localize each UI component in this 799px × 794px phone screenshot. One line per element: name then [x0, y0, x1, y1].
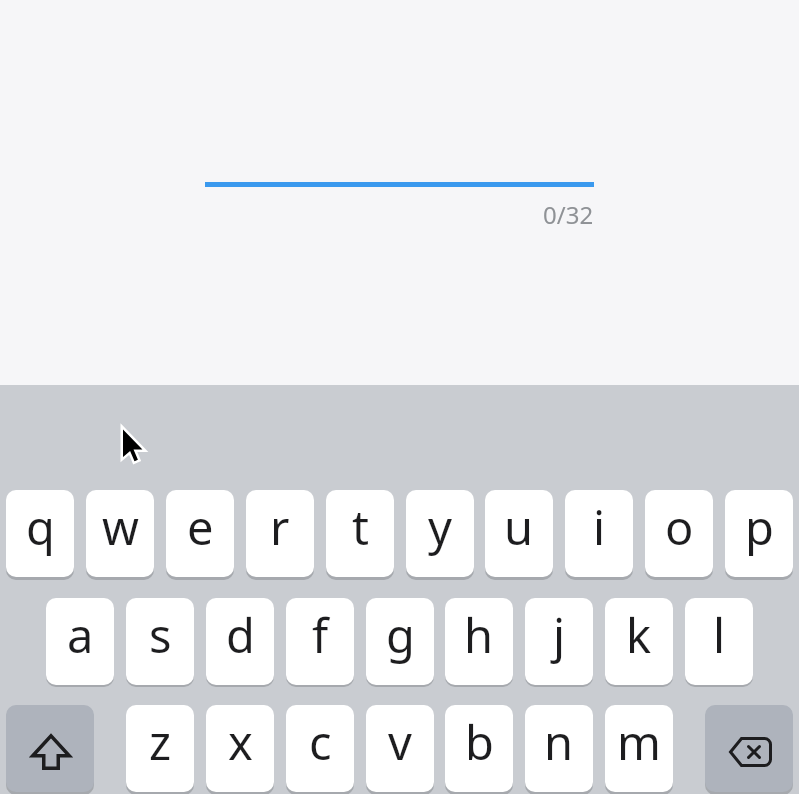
button[interactable]: t [326, 490, 394, 577]
staticText: d [226, 603, 255, 667]
button[interactable]: m [605, 705, 673, 792]
button[interactable]: f [286, 598, 354, 685]
staticText: h [464, 603, 494, 667]
button[interactable]: g [366, 598, 434, 685]
staticText: v [388, 710, 412, 774]
staticText: k [626, 603, 652, 667]
staticText: q [26, 495, 55, 559]
button[interactable] [205, 130, 594, 187]
button[interactable]: k [605, 598, 673, 685]
button[interactable]: e [166, 490, 234, 577]
button[interactable]: l [685, 598, 753, 685]
button[interactable]: v [366, 705, 434, 792]
button[interactable]: b [445, 705, 513, 792]
button[interactable]: r [246, 490, 314, 577]
staticText: f [312, 603, 329, 667]
staticText: g [386, 603, 415, 667]
staticText: n [544, 710, 574, 774]
staticText: s [149, 603, 172, 667]
button[interactable]: h [445, 598, 513, 685]
button[interactable]: u [485, 490, 553, 577]
staticText: i [593, 495, 606, 559]
button[interactable]: s [126, 598, 194, 685]
staticText: z [149, 710, 172, 774]
button[interactable]: n [525, 705, 593, 792]
staticText: b [465, 710, 494, 774]
button[interactable]: a [46, 598, 114, 685]
staticText: o [665, 495, 694, 559]
button[interactable]: z [126, 705, 194, 792]
button[interactable]: p [725, 490, 793, 577]
staticText: m [617, 710, 661, 774]
staticText: p [745, 495, 774, 559]
staticText: 0/32 [543, 198, 594, 228]
button[interactable]: x [206, 705, 274, 792]
staticText: a [67, 603, 94, 667]
button[interactable]: q [6, 490, 74, 577]
button[interactable]: j [525, 598, 593, 685]
staticText: l [713, 603, 726, 667]
button[interactable]: c [286, 705, 354, 792]
staticText: x [228, 710, 253, 774]
button[interactable]: d [206, 598, 274, 685]
button[interactable] [6, 705, 94, 792]
button[interactable]: i [565, 490, 633, 577]
button[interactable]: w [86, 490, 154, 577]
staticText: u [504, 495, 534, 559]
button[interactable] [705, 705, 793, 792]
button[interactable]: y [406, 490, 474, 577]
staticText: e [187, 495, 214, 559]
button[interactable]: o [645, 490, 713, 577]
staticText: w [102, 495, 139, 559]
staticText: c [309, 710, 332, 774]
staticText: t [352, 495, 369, 559]
staticText: r [270, 495, 290, 559]
staticText: y [428, 495, 452, 559]
staticText: j [553, 603, 566, 667]
